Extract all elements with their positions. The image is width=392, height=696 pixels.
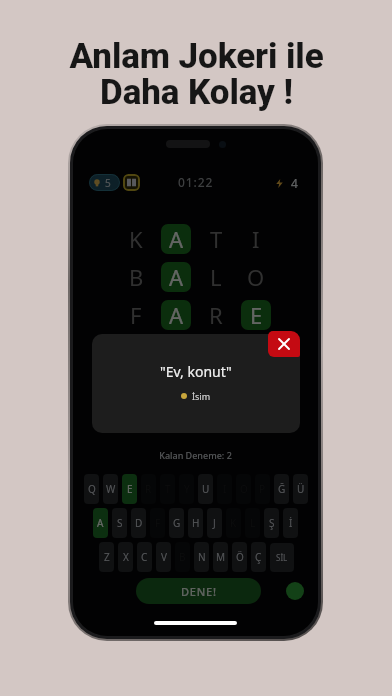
staticText: Kalan Deneme: 2 — [73, 449, 318, 461]
staticText: M — [216, 550, 226, 564]
staticText: X — [123, 550, 129, 564]
button[interactable]: Sozluk — [123, 174, 140, 191]
staticText: K — [129, 224, 143, 254]
button[interactable]: C — [137, 542, 152, 572]
button[interactable]: E — [122, 474, 137, 504]
staticText: Z — [104, 550, 110, 564]
staticText: Q — [88, 482, 96, 496]
staticText: A — [169, 262, 184, 292]
button[interactable]: S — [112, 508, 127, 538]
staticText: İsim — [192, 390, 211, 402]
button[interactable]: Q — [84, 474, 99, 504]
button[interactable]: V — [156, 542, 171, 572]
button[interactable]: X — [118, 542, 133, 572]
button[interactable]: M — [213, 542, 228, 572]
button[interactable]: Ü — [293, 474, 308, 504]
button[interactable]: 5 — [89, 174, 120, 191]
button[interactable]: SİL — [270, 543, 294, 572]
staticText: E — [127, 482, 133, 496]
button[interactable]: H — [188, 508, 203, 538]
staticText: Ğ — [278, 482, 286, 496]
staticText: Anlam Jokeri ile Daha Kolay ! — [69, 36, 324, 112]
staticText: A — [169, 224, 184, 254]
staticText: S — [117, 516, 123, 530]
staticText: R — [209, 300, 223, 330]
staticText: C — [141, 550, 148, 564]
staticText: T — [210, 224, 223, 254]
button[interactable]: Ç — [251, 542, 266, 572]
staticText: J — [213, 516, 216, 530]
staticText: Ş — [269, 516, 275, 530]
staticText: N — [198, 550, 206, 564]
button[interactable]: D — [131, 508, 146, 538]
button[interactable]: N — [194, 542, 209, 572]
staticText: B — [129, 262, 144, 292]
staticText: DENE! — [181, 584, 217, 599]
button[interactable]: Z — [99, 542, 114, 572]
staticText: SİL — [276, 552, 288, 563]
staticText: 5 — [105, 176, 111, 190]
staticText: D — [135, 516, 143, 530]
staticText: I — [252, 224, 260, 254]
button[interactable]: G — [169, 508, 184, 538]
staticText: A — [169, 300, 184, 330]
staticText: Ö — [236, 550, 244, 564]
staticText: "Ev, konut" — [160, 362, 232, 381]
staticText: Ç — [255, 550, 262, 564]
button[interactable]: Kapat — [268, 331, 300, 357]
staticText: L — [210, 262, 222, 292]
button[interactable]: J — [207, 508, 222, 538]
button[interactable]: Ş — [264, 508, 279, 538]
button[interactable]: Ö — [232, 542, 247, 572]
staticText: 01:22 — [178, 174, 214, 191]
staticText: A — [97, 516, 104, 530]
button[interactable]: U — [198, 474, 213, 504]
button[interactable]: Ğ — [274, 474, 289, 504]
staticText: 4 — [291, 175, 298, 191]
button[interactable]: DENE! — [136, 578, 261, 604]
staticText: V — [161, 550, 167, 564]
staticText: U — [202, 482, 210, 496]
button[interactable]: A — [93, 508, 108, 538]
staticText: W — [106, 482, 116, 496]
button[interactable]: W — [103, 474, 118, 504]
button[interactable]: Yardim — [286, 582, 304, 600]
staticText: F — [130, 300, 142, 330]
staticText: O — [247, 262, 265, 292]
staticText: G — [173, 516, 181, 530]
staticText: E — [250, 300, 263, 330]
button[interactable]: İ — [283, 508, 298, 538]
staticText: İ — [289, 516, 293, 530]
staticText: Ü — [297, 482, 305, 496]
staticText: H — [192, 516, 200, 530]
